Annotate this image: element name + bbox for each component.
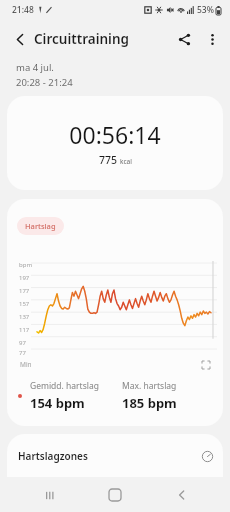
staticText: 20:28 - 21:24: [16, 76, 73, 89]
staticText: kcal: [120, 157, 132, 166]
staticText: 117: [19, 326, 30, 334]
button[interactable]: Back: [6, 25, 34, 53]
staticText: Gemidd. hartslag: [30, 380, 99, 392]
staticText: 157: [19, 300, 30, 308]
staticText: bpm: [19, 261, 32, 269]
staticText: 185 bpm: [122, 394, 177, 412]
staticText: 21:48: [12, 4, 34, 16]
staticText: Hartslag: [25, 221, 56, 231]
button[interactable]: Back: [164, 478, 200, 512]
button[interactable]: More options: [198, 25, 226, 53]
staticText: Max. hartslag: [122, 380, 177, 392]
staticText: 177: [19, 287, 30, 295]
button[interactable]: Recent apps: [31, 478, 67, 512]
staticText: 197: [19, 274, 30, 282]
staticText: Circuittraining: [34, 30, 129, 48]
button[interactable]: Hartslag: [7, 199, 223, 426]
staticText: ma 4 jul.: [16, 61, 54, 74]
staticText: Hartslagzones: [18, 449, 88, 463]
button[interactable]: Expand chart: [199, 358, 212, 371]
button[interactable]: Share: [170, 25, 198, 53]
button[interactable]: Hartslagzones: [7, 434, 223, 477]
button[interactable]: 00:56:14: [7, 96, 223, 190]
staticText: Min: [20, 360, 32, 369]
button[interactable]: Hartslag: [17, 217, 64, 235]
staticText: 77: [19, 349, 26, 357]
staticText: 137: [19, 313, 30, 321]
staticText: 775: [99, 153, 118, 167]
button[interactable]: Home: [97, 478, 133, 512]
staticText: 53%: [197, 4, 214, 16]
staticText: 154 bpm: [30, 394, 85, 412]
staticText: 97: [19, 339, 26, 347]
staticText: 00:56:14: [69, 119, 161, 150]
